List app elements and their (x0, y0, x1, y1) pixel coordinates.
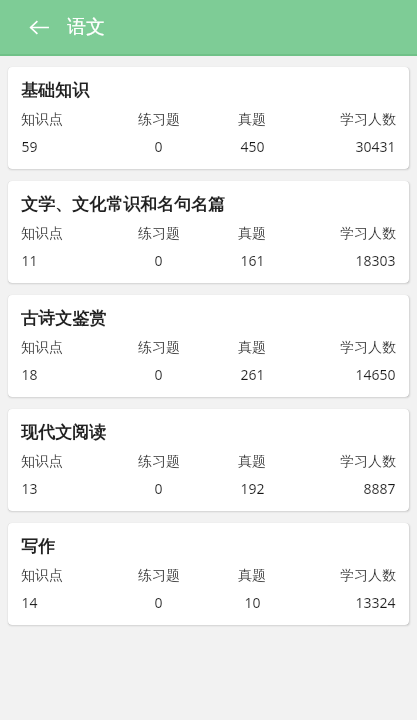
staticText: 13 (21, 479, 38, 498)
staticText: 14650 (355, 365, 396, 384)
staticText: 现代文阅读 (21, 422, 106, 443)
staticText: 450 (240, 137, 265, 156)
staticText: 文学、文化常识和名句名篇 (21, 194, 225, 215)
staticText: 真题 (238, 567, 266, 585)
staticText: 0 (154, 479, 163, 498)
staticText: 练习题 (138, 225, 180, 243)
staticText: 0 (154, 365, 163, 384)
staticText: 基础知识 (21, 80, 89, 101)
staticText: 18303 (355, 251, 396, 270)
staticText: 30431 (355, 137, 396, 156)
staticText: 练习题 (138, 567, 180, 585)
staticText: 真题 (238, 453, 266, 471)
button[interactable]: 现代文阅读 (8, 409, 409, 511)
button[interactable]: 基础知识 (8, 67, 409, 169)
staticText: 知识点 (21, 111, 63, 129)
staticText: 161 (240, 251, 265, 270)
staticText: 14 (21, 593, 38, 612)
staticText: 18 (21, 365, 38, 384)
staticText: 知识点 (21, 453, 63, 471)
button[interactable]: 写作 (8, 523, 409, 625)
staticText: 写作 (21, 536, 55, 557)
staticText: 练习题 (138, 339, 180, 357)
staticText: 8887 (363, 479, 396, 498)
staticText: 0 (154, 137, 163, 156)
staticText: 学习人数 (340, 111, 396, 129)
staticText: 真题 (238, 339, 266, 357)
staticText: 13324 (355, 593, 396, 612)
staticText: 学习人数 (340, 453, 396, 471)
staticText: 261 (240, 365, 265, 384)
staticText: 练习题 (138, 111, 180, 129)
staticText: 0 (154, 251, 163, 270)
staticText: 古诗文鉴赏 (21, 308, 106, 329)
staticText: 学习人数 (340, 567, 396, 585)
button[interactable]: 古诗文鉴赏 (8, 295, 409, 397)
staticText: 语文 (67, 15, 105, 39)
staticText: 知识点 (21, 339, 63, 357)
staticText: 知识点 (21, 567, 63, 585)
button[interactable]: Back (24, 12, 54, 42)
button[interactable]: 文学、文化常识和名句名篇 (8, 181, 409, 283)
staticText: 0 (154, 593, 163, 612)
staticText: 真题 (238, 111, 266, 129)
staticText: 学习人数 (340, 339, 396, 357)
staticText: 学习人数 (340, 225, 396, 243)
staticText: 11 (21, 251, 38, 270)
staticText: 59 (21, 137, 38, 156)
staticText: 192 (240, 479, 265, 498)
staticText: 知识点 (21, 225, 63, 243)
staticText: 10 (244, 593, 261, 612)
staticText: 真题 (238, 225, 266, 243)
staticText: 练习题 (138, 453, 180, 471)
